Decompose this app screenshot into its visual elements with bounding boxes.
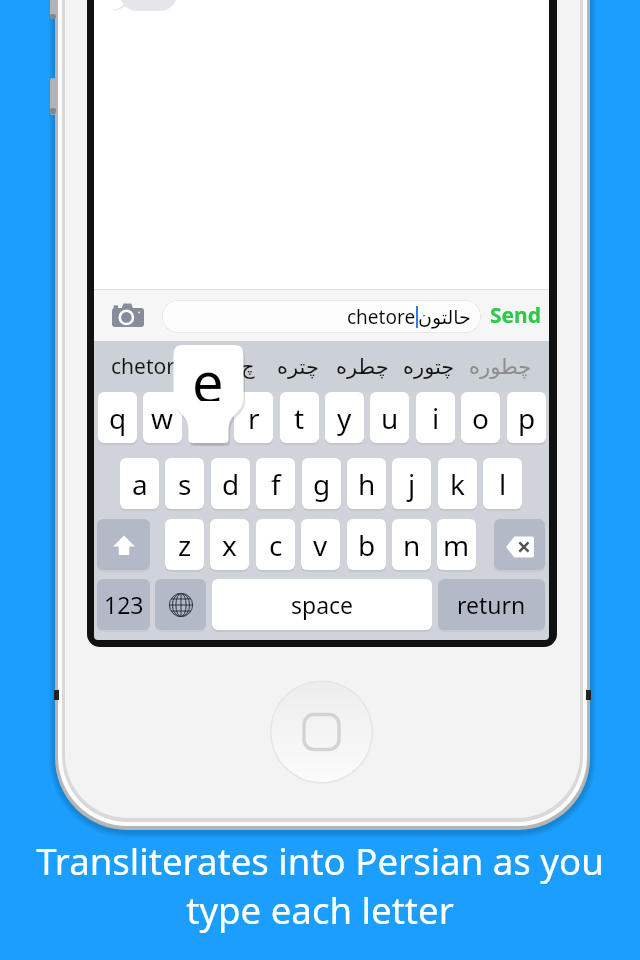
button[interactable]: g — [302, 458, 341, 509]
staticText: Transliterates into Persian as you type … — [36, 836, 604, 935]
staticText: r — [248, 399, 260, 437]
button[interactable]: p — [507, 392, 546, 443]
button[interactable]: u — [370, 392, 409, 443]
staticText: h — [358, 465, 376, 503]
button[interactable]: chetore — [162, 300, 481, 333]
staticText: k — [450, 465, 465, 503]
button[interactable]: چتره — [274, 348, 322, 385]
staticText: x — [222, 526, 237, 564]
staticText: w — [151, 399, 174, 437]
button[interactable]: d — [211, 458, 250, 509]
staticText: t — [294, 399, 305, 437]
button[interactable]: x — [210, 519, 249, 570]
staticText: y — [337, 399, 352, 437]
staticText: i — [432, 399, 440, 437]
button[interactable]: n — [392, 519, 431, 570]
staticText: حالتون — [418, 306, 471, 328]
button[interactable]: q — [98, 392, 137, 443]
staticText: a — [132, 465, 148, 503]
button[interactable]: space — [212, 579, 432, 630]
staticText: b — [358, 526, 376, 564]
button[interactable]: چطره — [333, 348, 392, 385]
button[interactable]: z — [165, 519, 204, 570]
staticText: return — [457, 589, 526, 620]
staticText: o — [472, 399, 489, 437]
staticText: چتوره — [403, 355, 455, 379]
staticText: v — [313, 526, 328, 564]
staticText: p — [518, 399, 536, 437]
button[interactable]: چطوره — [466, 348, 535, 385]
staticText: chetore — [111, 352, 187, 381]
staticText: e — [192, 343, 224, 401]
button[interactable]: r — [234, 392, 273, 443]
staticText: s — [178, 465, 192, 503]
staticText: g — [313, 465, 331, 503]
button[interactable]: k — [438, 458, 477, 509]
button[interactable]: delete — [494, 519, 545, 570]
button[interactable]: j — [392, 458, 431, 509]
staticText: u — [381, 399, 399, 437]
button[interactable]: w — [143, 392, 182, 443]
button[interactable]: return — [438, 579, 545, 630]
staticText: 123 — [104, 589, 144, 620]
button[interactable]: shift — [97, 519, 150, 570]
staticText: چ — [241, 355, 255, 379]
staticText: Send — [490, 301, 542, 330]
button[interactable]: l — [483, 458, 522, 509]
staticText: space — [291, 589, 354, 620]
button[interactable]: b — [347, 519, 386, 570]
button[interactable]: o — [461, 392, 500, 443]
staticText: chetore — [347, 304, 416, 330]
staticText: f — [271, 465, 281, 503]
staticText: z — [178, 526, 192, 564]
button[interactable]: چتوره — [400, 348, 458, 385]
staticText: چطره — [336, 355, 389, 379]
staticText: چتره — [277, 355, 319, 379]
staticText: n — [403, 526, 421, 564]
button[interactable]: Send — [488, 299, 544, 331]
button[interactable]: globe — [155, 579, 206, 630]
staticText: q — [109, 399, 127, 437]
staticText: m — [443, 526, 470, 564]
button[interactable]: y — [325, 392, 364, 443]
button[interactable]: m — [437, 519, 476, 570]
staticText: d — [222, 465, 240, 503]
staticText: j — [408, 465, 416, 503]
button[interactable]: چ — [238, 348, 258, 385]
button[interactable]: c — [256, 519, 295, 570]
button[interactable]: a — [120, 458, 159, 509]
button[interactable]: e — [189, 392, 228, 443]
staticText: e — [201, 399, 217, 437]
button[interactable]: chetore — [108, 348, 190, 385]
staticText: چطوره — [469, 355, 532, 379]
button[interactable]: Camera — [108, 295, 148, 335]
button[interactable]: h — [347, 458, 386, 509]
staticText: l — [499, 465, 507, 503]
staticText: c — [269, 526, 283, 564]
button[interactable]: v — [301, 519, 340, 570]
button[interactable]: f — [256, 458, 295, 509]
button[interactable]: 123 — [97, 579, 150, 630]
button[interactable]: s — [165, 458, 204, 509]
button[interactable]: i — [416, 392, 455, 443]
button[interactable]: t — [280, 392, 319, 443]
